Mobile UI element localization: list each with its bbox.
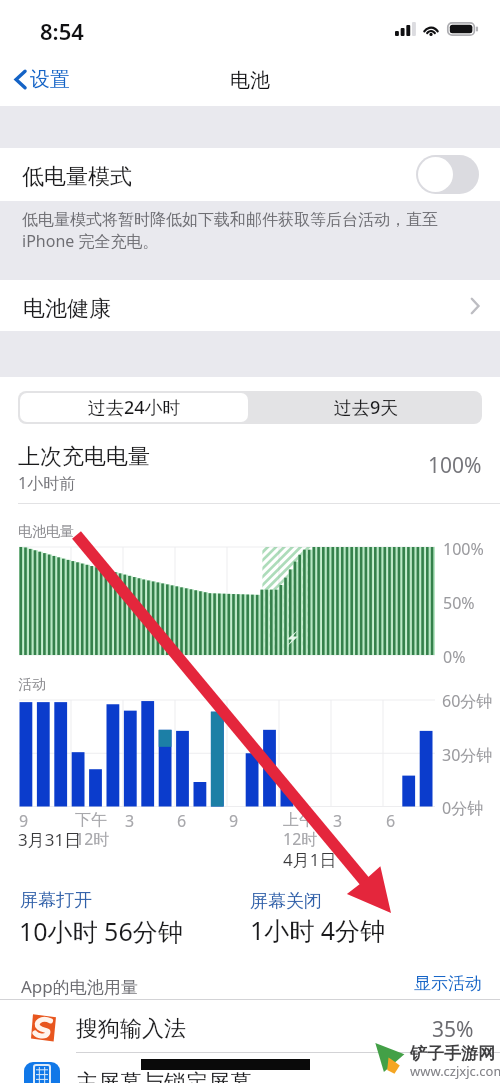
button[interactable]: 低电量模式 [0,148,500,201]
staticText: 9 [229,810,239,832]
staticText: 12时 [75,828,110,850]
button[interactable]: 过去9天 [250,391,482,424]
staticText: www.czjxjc.com [410,1062,500,1080]
staticText: 屏幕打开 [20,889,92,912]
staticText: 上午 [283,810,315,830]
button[interactable]: 电池健康 [0,280,500,331]
staticText: 100% [443,538,484,560]
staticText: 0分钟 [442,797,484,819]
staticText: 过去24小时 [88,395,181,420]
staticText: 活动 [18,676,46,694]
staticText: 3 [333,810,343,832]
staticText: 50% [443,592,475,614]
button[interactable]: 设置 [14,67,70,92]
staticText: 1小时 4分钟 [250,913,386,947]
staticText: 35% [432,1015,474,1044]
staticText: 8:54 [40,16,84,46]
staticText: 30分钟 [442,744,493,766]
staticText: 电池健康 [23,295,111,323]
staticText: 100% [428,451,482,480]
staticText: 搜狗输入法 [76,1015,186,1043]
staticText: 3月31日 [18,828,82,851]
staticText: 低电量模式将暂时降低如下载和邮件获取等后台活动，直至 iPhone 完全充电。 [22,210,438,252]
staticText: 电池电量 [18,523,74,541]
staticText: 4月1日 [283,848,337,871]
staticText: 低电量模式 [22,163,132,191]
staticText: 12时 [283,828,318,850]
button[interactable]: 过去24小时 [20,393,248,422]
button[interactable]: 搜狗输入法 [0,1000,500,1052]
staticText: 电池 [230,68,270,93]
staticText: 3 [125,810,135,832]
staticText: 9 [19,810,29,832]
staticText: 下午 [75,810,107,830]
staticText: 过去9天 [334,395,399,420]
staticText: 6 [386,810,396,832]
staticText: 上次充电电量 [18,443,150,471]
staticText: 6 [177,810,187,832]
staticText: 主屏幕与锁定屏幕 [76,1069,252,1083]
staticText: 铲子手游网 [410,1043,495,1064]
button[interactable]: 主屏幕与锁定屏幕 [0,1053,500,1083]
staticText: 设置 [30,67,70,92]
staticText: 60分钟 [442,690,493,712]
button[interactable]: 显示活动 [414,973,482,994]
staticText: App的电池用量 [21,975,138,998]
staticText: 屏幕关闭 [250,890,322,913]
staticText: 10小时 56分钟 [19,914,183,948]
button[interactable]: 低电量模式开关 [416,155,479,194]
staticText: 0% [443,646,466,668]
staticText: 1小时前 [18,472,76,494]
